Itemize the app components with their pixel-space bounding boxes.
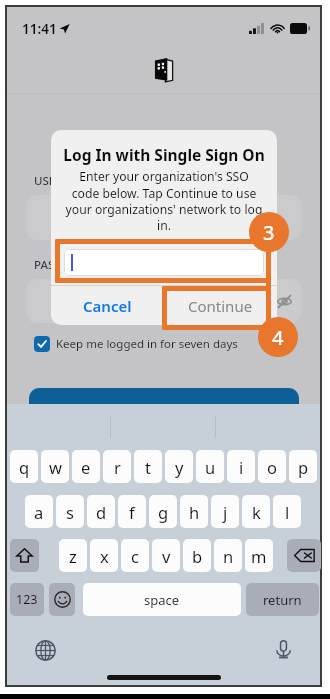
staticText: u bbox=[205, 456, 216, 478]
button[interactable]: Dictate bbox=[273, 639, 294, 660]
button[interactable]: Continue bbox=[164, 286, 277, 325]
staticText: Cancel bbox=[83, 296, 132, 316]
staticText: n bbox=[223, 545, 234, 567]
button[interactable]: Hide password bbox=[277, 294, 292, 309]
button[interactable]: g bbox=[149, 495, 177, 528]
button[interactable]: i bbox=[227, 450, 255, 483]
staticText: 11:41 bbox=[22, 20, 57, 38]
staticText: PASSWORD bbox=[34, 257, 97, 273]
button[interactable]: l bbox=[273, 495, 301, 528]
button[interactable]: d bbox=[87, 495, 115, 528]
button[interactable]: Cancel bbox=[51, 286, 164, 325]
staticText: 4 bbox=[272, 324, 284, 351]
staticText: v bbox=[162, 545, 171, 567]
button[interactable]: Change keyboard language bbox=[35, 640, 56, 661]
button[interactable]: space bbox=[83, 583, 241, 616]
staticText: a bbox=[34, 501, 44, 523]
staticText: Continue bbox=[188, 296, 253, 316]
staticText: USERNAME bbox=[34, 173, 96, 189]
button[interactable]: z bbox=[59, 539, 87, 572]
button[interactable]: return bbox=[246, 583, 319, 616]
button[interactable]: x bbox=[90, 539, 118, 572]
button[interactable]: b bbox=[183, 539, 211, 572]
button[interactable]: r bbox=[103, 450, 131, 483]
button[interactable]: n bbox=[214, 539, 242, 572]
staticText: Enter your organization's SSO code below… bbox=[64, 168, 264, 233]
button[interactable]: f bbox=[118, 495, 146, 528]
staticText: 123 bbox=[16, 591, 38, 608]
button[interactable]: Backspace bbox=[287, 539, 321, 572]
staticText: j bbox=[223, 501, 228, 523]
button[interactable]: w bbox=[41, 450, 69, 483]
staticText: b bbox=[192, 545, 203, 567]
button[interactable]: a bbox=[25, 495, 53, 528]
button[interactable]: m bbox=[245, 539, 273, 572]
button[interactable]: Emoji bbox=[49, 583, 75, 616]
staticText: f bbox=[129, 501, 135, 523]
button[interactable] bbox=[29, 388, 299, 428]
staticText: r bbox=[114, 456, 121, 478]
staticText: l bbox=[285, 501, 290, 523]
staticText: z bbox=[69, 545, 77, 567]
staticText: d bbox=[96, 501, 107, 523]
button[interactable]: o bbox=[258, 450, 286, 483]
button[interactable]: k bbox=[242, 495, 270, 528]
button[interactable]: Shift bbox=[10, 539, 39, 572]
staticText: s bbox=[66, 501, 74, 523]
staticText: q bbox=[19, 456, 30, 478]
staticText: w bbox=[49, 456, 62, 478]
button[interactable]: q bbox=[10, 450, 38, 483]
staticText: p bbox=[298, 456, 309, 478]
button[interactable]: c bbox=[121, 539, 149, 572]
button[interactable]: h bbox=[180, 495, 208, 528]
button[interactable]: 123 bbox=[10, 583, 44, 616]
button[interactable] bbox=[27, 195, 301, 240]
button[interactable] bbox=[27, 279, 301, 323]
button[interactable]: p bbox=[289, 450, 317, 483]
staticText: i bbox=[239, 456, 244, 478]
staticText: Log In with Single Sign On bbox=[55, 144, 273, 165]
staticText: e bbox=[81, 456, 91, 478]
staticText: 3 bbox=[263, 219, 275, 246]
staticText: k bbox=[252, 501, 261, 523]
button[interactable]: j bbox=[211, 495, 239, 528]
staticText: x bbox=[100, 545, 109, 567]
staticText: m bbox=[251, 545, 267, 567]
staticText: t bbox=[145, 456, 151, 478]
staticText: Keep me logged in for seven days bbox=[56, 336, 238, 352]
staticText: y bbox=[175, 456, 184, 478]
button[interactable]: y bbox=[165, 450, 193, 483]
staticText: g bbox=[158, 501, 169, 523]
staticText: return bbox=[263, 591, 302, 609]
button[interactable]: t bbox=[134, 450, 162, 483]
staticText: c bbox=[131, 545, 139, 567]
button[interactable]: e bbox=[72, 450, 100, 483]
button[interactable]: v bbox=[152, 539, 180, 572]
button[interactable]: u bbox=[196, 450, 224, 483]
staticText: space bbox=[144, 591, 180, 609]
button[interactable]: Keep me logged in for seven days bbox=[34, 336, 238, 352]
staticText: h bbox=[189, 501, 200, 523]
button[interactable] bbox=[64, 249, 264, 276]
staticText: o bbox=[267, 456, 277, 478]
button[interactable]: s bbox=[56, 495, 84, 528]
